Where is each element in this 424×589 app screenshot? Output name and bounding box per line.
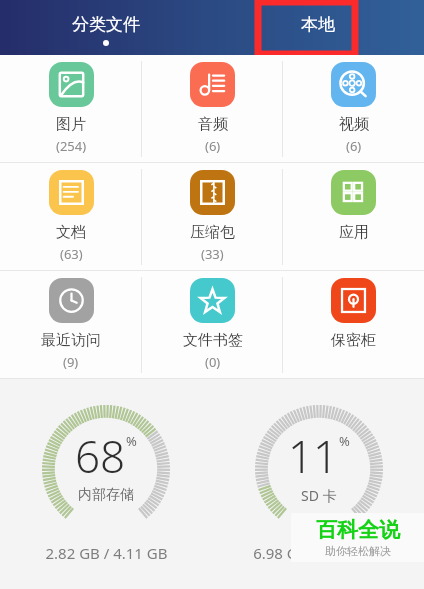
button[interactable]: 文件书签 — [142, 271, 283, 378]
staticText: 11 — [288, 426, 339, 486]
staticText: 2.82 GB / 4.11 GB — [45, 543, 168, 563]
staticText: 文件书签 — [183, 331, 243, 350]
staticText: 保密柜 — [331, 331, 376, 350]
staticText: 音频 — [198, 115, 228, 134]
button[interactable]: 分类文件 — [0, 0, 212, 55]
staticText: (9) — [63, 353, 79, 371]
staticText: 百科全说 — [316, 517, 400, 543]
staticText: 68 — [75, 426, 126, 486]
staticText: 视频 — [339, 115, 369, 134]
staticText: 助你轻松解决 — [325, 544, 391, 558]
button[interactable]: 应用 — [283, 163, 424, 270]
staticText: 6.98 GB / 58.24 GB — [253, 543, 384, 563]
staticText: (63) — [60, 245, 83, 263]
staticText: 文档 — [56, 223, 86, 242]
button[interactable]: 音频 — [142, 55, 283, 162]
staticText: % — [126, 432, 137, 450]
staticText: (6) — [205, 137, 221, 155]
button[interactable]: 视频 — [283, 55, 424, 162]
staticText: 内部存储 — [78, 486, 134, 504]
staticText: % — [339, 432, 350, 450]
staticText: SD 卡 — [301, 486, 337, 505]
button[interactable]: 文档 — [0, 163, 142, 270]
staticText: 最近访问 — [41, 331, 101, 350]
staticText: (0) — [205, 353, 221, 371]
button[interactable]: 保密柜 — [283, 271, 424, 378]
staticText: 本地 — [301, 14, 335, 35]
staticText: (6) — [346, 137, 362, 155]
button[interactable]: 最近访问 — [0, 271, 142, 378]
staticText: 图片 — [56, 115, 86, 134]
staticText: 压缩包 — [190, 223, 235, 242]
button[interactable]: 图片 — [0, 55, 142, 162]
staticText: 分类文件 — [72, 14, 140, 35]
button[interactable]: 压缩包 — [142, 163, 283, 270]
button[interactable]: 本地 — [212, 0, 424, 55]
staticText: (254) — [56, 137, 87, 155]
staticText: (33) — [201, 245, 224, 263]
staticText: 应用 — [339, 223, 369, 242]
